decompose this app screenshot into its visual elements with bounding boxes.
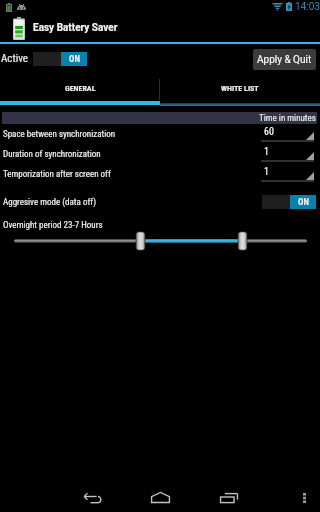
button[interactable]: Home xyxy=(138,480,182,512)
button[interactable]: Temporization after screen off xyxy=(0,167,320,187)
button[interactable]: ON xyxy=(33,52,87,66)
staticText: Easy Battery Saver xyxy=(33,22,118,34)
button[interactable]: Aggresive mode (data off) xyxy=(0,193,320,211)
button[interactable]: Apply & Quit xyxy=(253,49,316,70)
staticText: 1 xyxy=(264,166,269,178)
staticText: Temporization after screen off xyxy=(3,169,111,180)
staticText: Duration of synchronization xyxy=(3,149,101,160)
button[interactable] xyxy=(0,232,320,252)
staticText: GENERAL xyxy=(65,84,96,93)
button[interactable]: ON xyxy=(262,195,316,209)
button[interactable]: Duration of synchronization xyxy=(0,147,320,167)
staticText: Overnight period 23-7 Hours xyxy=(3,220,103,231)
button[interactable]: GENERAL xyxy=(0,78,160,106)
staticText: Active xyxy=(1,52,28,65)
button[interactable]: Recent apps xyxy=(207,481,251,512)
staticText: ON xyxy=(298,197,309,208)
staticText: ON xyxy=(69,54,80,65)
staticText: Space between synchronization xyxy=(3,129,116,140)
button[interactable]: Space between synchronization xyxy=(0,127,320,147)
button[interactable]: More options xyxy=(292,485,316,511)
button[interactable]: Back xyxy=(70,481,114,512)
staticText: 1 xyxy=(264,146,269,158)
staticText: Apply & Quit xyxy=(257,54,312,66)
staticText: Aggresive mode (data off) xyxy=(3,197,97,208)
staticText: 14:03 xyxy=(295,1,320,13)
button[interactable]: WHITE LIST xyxy=(160,78,320,106)
staticText: 60 xyxy=(264,126,274,138)
staticText: WHITE LIST xyxy=(221,84,259,93)
staticText: Time in minutes xyxy=(259,113,316,124)
